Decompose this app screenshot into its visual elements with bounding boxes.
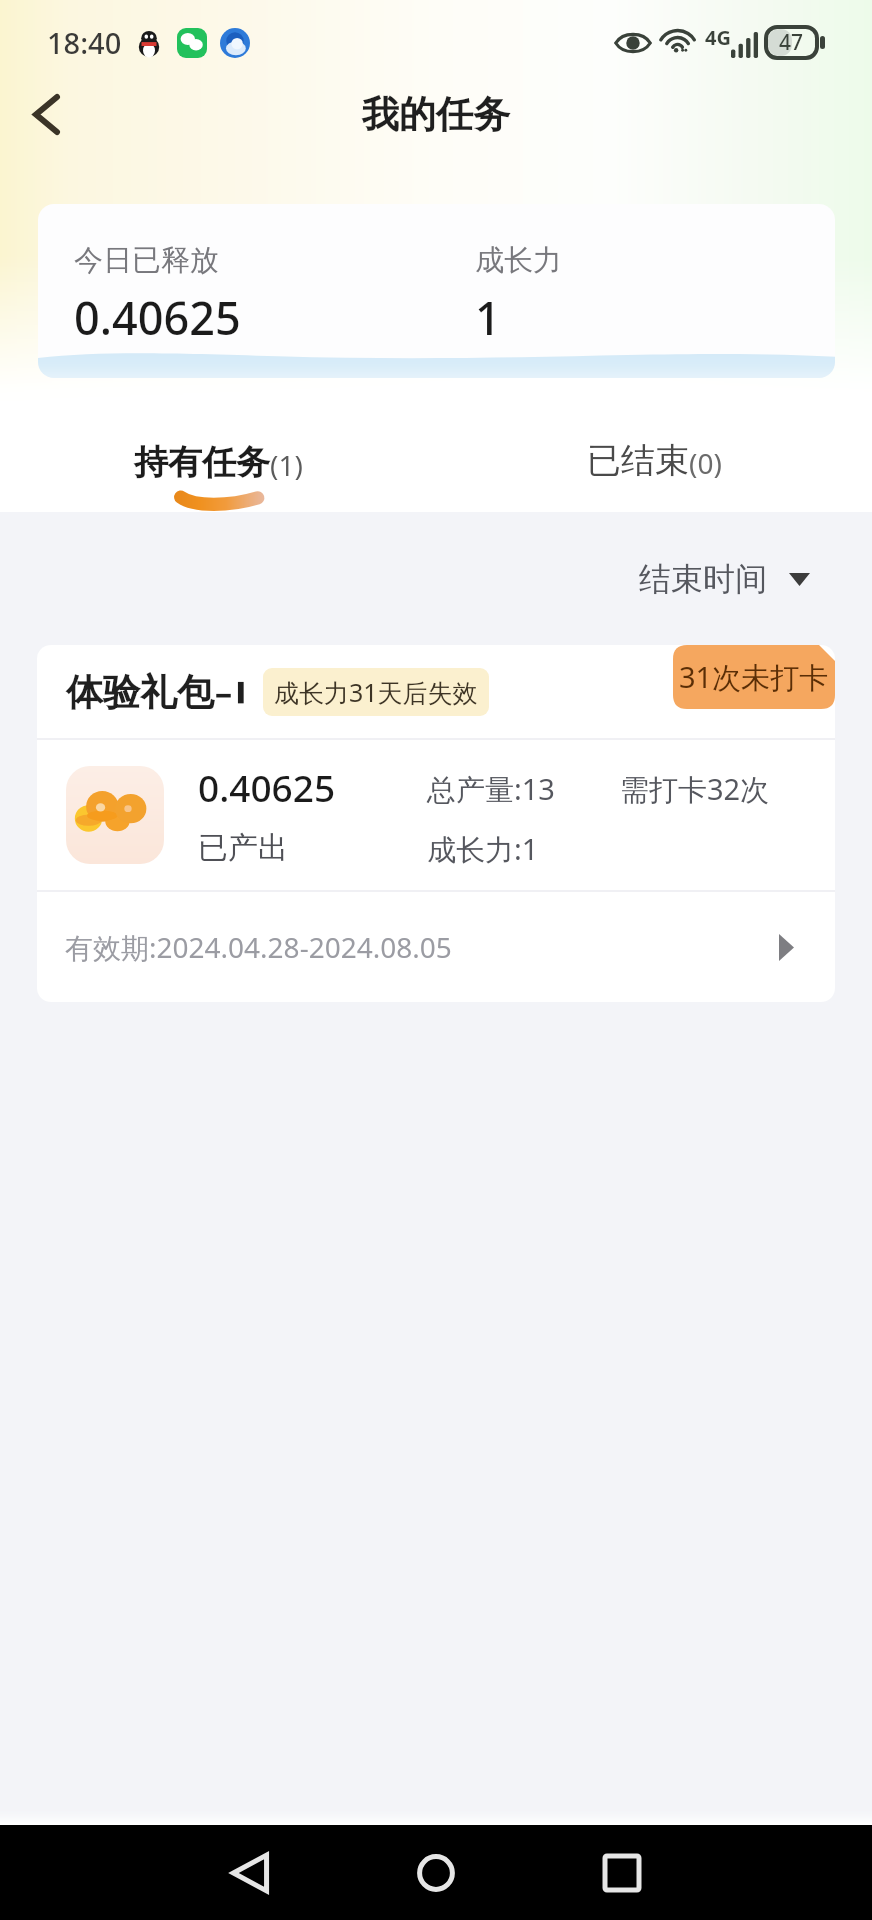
button[interactable]: 结束时间 (639, 559, 810, 599)
button[interactable]: 持有任务 (0, 410, 436, 512)
staticText: 已产出 (198, 829, 288, 867)
staticText: (0) (689, 444, 722, 482)
staticText: 0.40625 (74, 287, 241, 348)
staticText: 1 (475, 287, 501, 348)
staticText: 总产量:13 (427, 769, 555, 809)
staticText: 持有任务 (134, 441, 270, 484)
staticText: 我的任务 (362, 91, 510, 138)
button[interactable]: 体验礼包 (37, 645, 835, 1002)
button[interactable]: Back (208, 1831, 292, 1915)
staticText: 成长力:1 (427, 829, 539, 869)
staticText: 有效期:2024.04.28-2024.08.05 (65, 928, 452, 966)
staticText: 47 (779, 28, 804, 57)
staticText: 已结束 (587, 439, 689, 482)
button[interactable]: Recent apps (580, 1831, 664, 1915)
staticText: (1) (270, 446, 303, 484)
staticText: 31次未打卡 (679, 657, 829, 697)
button[interactable]: Back (18, 86, 74, 142)
staticText: 4G (705, 24, 731, 51)
staticText: 18:40 (47, 23, 122, 62)
button[interactable]: 已结束 (436, 410, 872, 512)
staticText: 成长力31天后失效 (274, 675, 478, 709)
staticText: 今日已释放 (74, 242, 219, 279)
staticText: 体验礼包 (66, 669, 214, 716)
button[interactable]: Home (394, 1831, 478, 1915)
staticText: 结束时间 (639, 559, 767, 599)
staticText: 成长力 (475, 242, 562, 279)
staticText: 需打卡32次 (620, 769, 770, 809)
staticText: 0.40625 (198, 762, 336, 812)
